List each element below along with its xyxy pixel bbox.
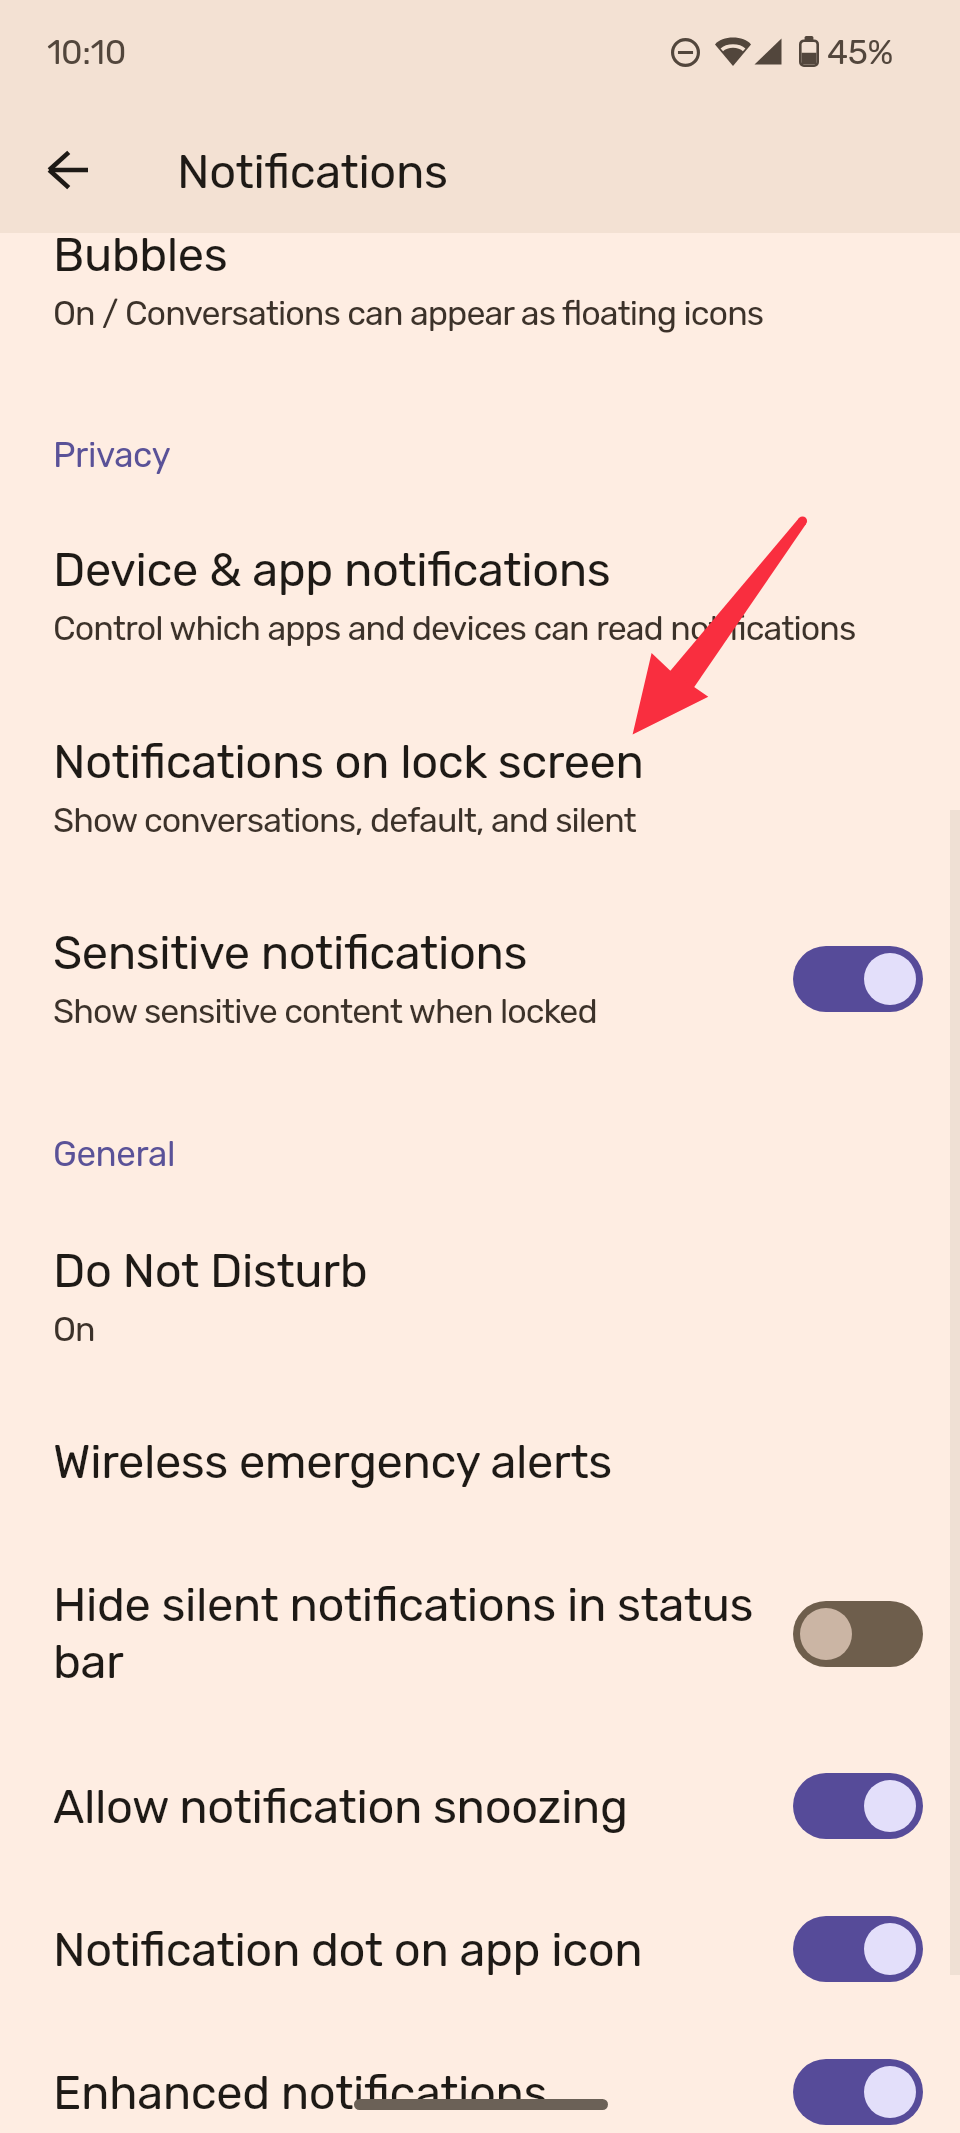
staticText: On / Conversations can appear as floatin… bbox=[53, 293, 764, 333]
staticText: Device & app notifications bbox=[53, 542, 953, 598]
button[interactable]: Hide silent notifications in status bar bbox=[0, 1552, 960, 1704]
button[interactable]: Allow notification snoozing bbox=[793, 1773, 923, 1839]
button[interactable]: Notifications on lock screen bbox=[0, 709, 960, 839]
button[interactable]: Enhanced notifications bbox=[793, 2059, 923, 2125]
staticText: Hide silent notifications in status bar bbox=[53, 1577, 773, 1690]
button[interactable]: Enhanced notifications bbox=[0, 2040, 960, 2132]
button[interactable]: Navigate back bbox=[24, 126, 112, 214]
staticText: General bbox=[53, 1133, 176, 1174]
staticText: Notifications bbox=[177, 144, 448, 200]
staticText: Sensitive notifications bbox=[53, 925, 953, 981]
button[interactable]: Wireless emergency alerts bbox=[0, 1409, 960, 1501]
button[interactable]: Hide silent notifications in status bar bbox=[793, 1601, 923, 1667]
button[interactable]: Notification dot on app icon bbox=[793, 1916, 923, 1982]
button[interactable]: Notification dot on app icon bbox=[0, 1897, 960, 1989]
staticText: Show conversations, default, and silent bbox=[53, 800, 636, 840]
staticText: Privacy bbox=[53, 434, 171, 475]
button[interactable]: Do Not Disturb bbox=[0, 1218, 960, 1348]
staticText: Enhanced notifications bbox=[53, 2065, 953, 2121]
staticText: On bbox=[53, 1309, 95, 1349]
button[interactable]: Allow notification snoozing bbox=[0, 1754, 960, 1846]
button[interactable]: Device & app notifications bbox=[0, 517, 960, 647]
staticText: 10:10 bbox=[47, 32, 126, 72]
staticText: Notifications on lock screen bbox=[53, 734, 953, 790]
staticText: Do Not Disturb bbox=[53, 1243, 953, 1299]
staticText: Allow notification snoozing bbox=[53, 1779, 953, 1835]
staticText: Wireless emergency alerts bbox=[53, 1434, 953, 1490]
staticText: Control which apps and devices can read … bbox=[53, 608, 856, 648]
staticText: Show sensitive content when locked bbox=[53, 991, 597, 1031]
button[interactable]: Sensitive notifications bbox=[0, 900, 960, 1030]
staticText: Bubbles bbox=[53, 227, 953, 283]
button[interactable]: Bubbles bbox=[0, 202, 960, 332]
staticText: 45% bbox=[827, 32, 893, 72]
button[interactable]: Sensitive notifications bbox=[793, 946, 923, 1012]
staticText: Notification dot on app icon bbox=[53, 1922, 953, 1978]
